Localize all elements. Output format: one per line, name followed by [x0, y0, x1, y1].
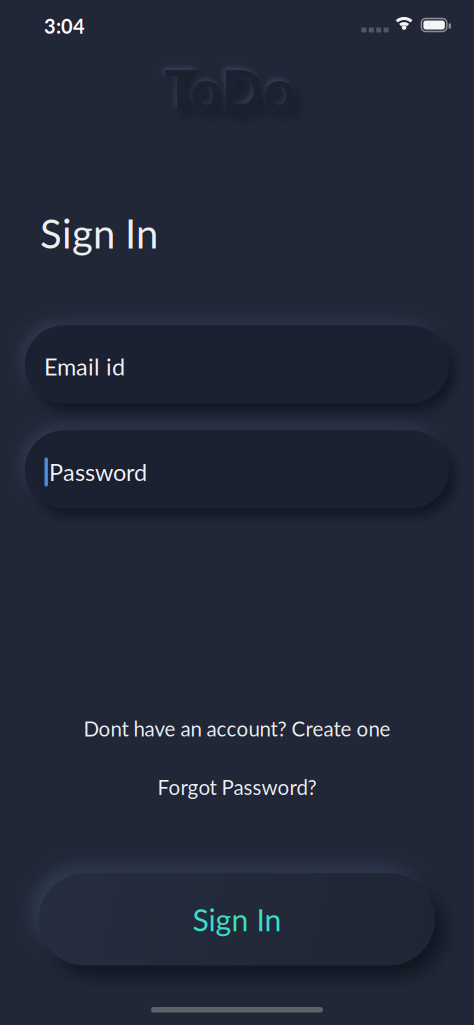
staticText: ToDo [164, 56, 295, 122]
button[interactable]: Password [25, 430, 449, 508]
button[interactable]: Dont have an account? Create one [83, 716, 390, 741]
staticText: 3:04 [44, 14, 85, 38]
button[interactable]: Forgot Password? [157, 774, 316, 799]
button[interactable]: Email id [25, 325, 449, 403]
staticText: ToDo [164, 56, 295, 122]
staticText: Password [49, 458, 147, 486]
staticText: Email id [44, 352, 125, 381]
staticText: Dont have an account? Create one [83, 716, 390, 741]
staticText: Forgot Password? [157, 775, 316, 799]
staticText: Sign In [192, 901, 281, 938]
button[interactable]: Sign In [39, 873, 435, 965]
staticText: Sign In [40, 209, 158, 257]
